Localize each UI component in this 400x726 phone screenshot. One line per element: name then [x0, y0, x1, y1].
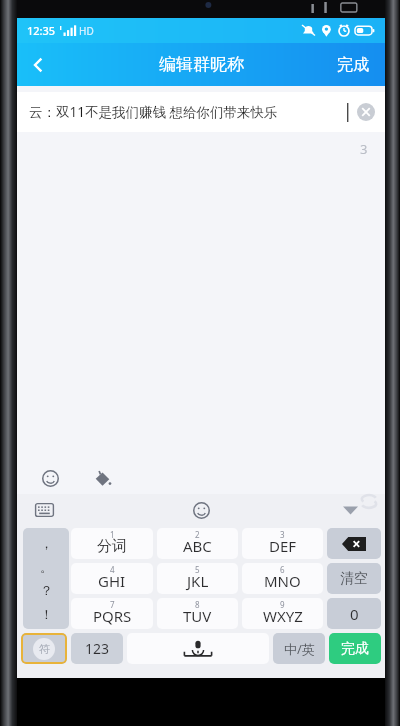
button[interactable]: Symbols: [21, 633, 67, 664]
button[interactable]: Emoji: [37, 465, 63, 491]
staticText: ？: [40, 582, 53, 598]
staticText: ABC: [183, 536, 212, 556]
button[interactable]: 2: [157, 528, 238, 559]
button[interactable]: 1: [71, 528, 153, 559]
staticText: 云：双11不是我们赚钱 想给你们带来快乐: [29, 103, 347, 121]
staticText: 完成: [341, 640, 369, 658]
staticText: WXYZ: [263, 606, 303, 626]
staticText: 123: [85, 639, 110, 658]
staticText: 8: [195, 599, 200, 610]
button[interactable]: ，: [23, 528, 69, 629]
staticText: 。: [40, 559, 53, 575]
staticText: 编辑群昵称: [159, 54, 244, 75]
staticText: 6: [280, 564, 285, 575]
staticText: 3: [360, 140, 368, 158]
staticText: 1: [110, 529, 115, 540]
button[interactable]: 7: [71, 598, 153, 629]
button[interactable]: 9: [242, 598, 323, 629]
button[interactable]: 完成: [321, 43, 385, 86]
button[interactable]: 8: [157, 598, 238, 629]
button[interactable]: 0: [327, 598, 381, 629]
staticText: MNO: [264, 571, 301, 591]
staticText: 3: [280, 529, 285, 540]
staticText: 12:35: [27, 23, 56, 38]
staticText: TUV: [183, 606, 212, 626]
button[interactable]: Back: [17, 43, 61, 86]
button[interactable]: Space / voice input: [127, 633, 269, 664]
staticText: 5: [195, 564, 200, 575]
button[interactable]: Clear text: [357, 103, 375, 121]
staticText: 分词: [97, 537, 127, 556]
button[interactable]: Hide keyboard: [335, 495, 365, 525]
staticText: 中/英: [284, 640, 315, 658]
staticText: ，: [40, 535, 53, 551]
staticText: 完成: [337, 55, 369, 75]
staticText: JKL: [187, 571, 209, 591]
staticText: HD: [79, 24, 94, 38]
button[interactable]: Theme colour: [89, 465, 115, 491]
button[interactable]: 123: [71, 633, 123, 664]
staticText: 0: [350, 604, 359, 624]
staticText: 4: [110, 564, 115, 575]
button[interactable]: Backspace: [327, 528, 381, 559]
staticText: PQRS: [93, 606, 132, 626]
button[interactable]: Emoji panel: [186, 495, 216, 525]
button[interactable]: 中/英: [273, 633, 325, 664]
staticText: 清空: [340, 570, 368, 588]
button[interactable]: 3: [242, 528, 323, 559]
button[interactable]: 云：双11不是我们赚钱 想给你们带来快乐: [17, 92, 385, 132]
staticText: 2: [195, 529, 200, 540]
staticText: 符: [39, 642, 50, 656]
button[interactable]: 5: [157, 563, 238, 594]
button[interactable]: 6: [242, 563, 323, 594]
button[interactable]: Keyboard layout: [29, 495, 59, 525]
button[interactable]: 清空: [327, 563, 381, 594]
staticText: 9: [280, 599, 285, 610]
staticText: GHI: [98, 571, 126, 591]
staticText: DEF: [269, 536, 297, 556]
staticText: ！: [40, 606, 53, 622]
button[interactable]: 4: [71, 563, 153, 594]
staticText: 7: [110, 599, 115, 610]
button[interactable]: 完成: [329, 633, 381, 664]
